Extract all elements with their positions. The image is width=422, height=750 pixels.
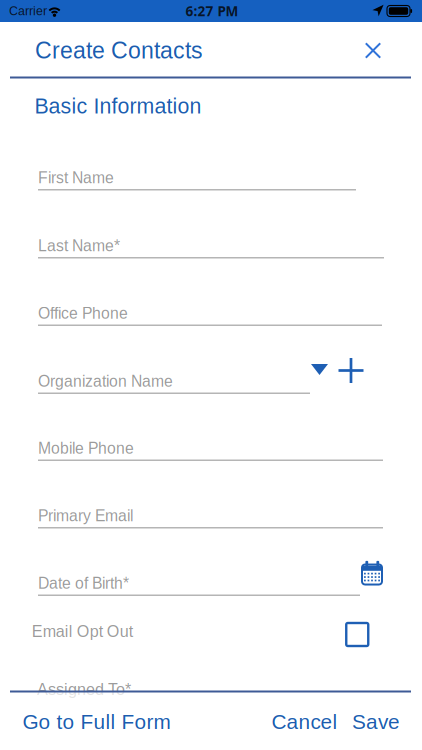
staticText: First Name (38, 169, 114, 186)
button[interactable]: Date of Birth* (38, 558, 360, 596)
button[interactable]: Email Opt Out (32, 614, 368, 648)
button[interactable] (360, 560, 384, 586)
button[interactable] (358, 35, 388, 65)
staticText: Organization Name (38, 372, 173, 390)
button[interactable]: Office Phone (38, 288, 382, 326)
button[interactable]: Mobile Phone (38, 423, 383, 461)
button[interactable]: First Name (38, 152, 356, 190)
staticText: Email Opt Out (32, 622, 133, 640)
staticText: Assigned To* (37, 680, 131, 698)
staticText: Last Name* (38, 237, 120, 254)
button[interactable]: Organization Name (38, 356, 310, 394)
staticText: Date of Birth* (38, 574, 129, 592)
staticText: Carrier (9, 4, 47, 18)
staticText: Save (352, 710, 400, 733)
staticText: 6:27 PM (185, 2, 238, 20)
button[interactable]: Go to Full Form (0, 710, 170, 733)
button[interactable]: Cancel (271, 710, 337, 733)
staticText: Basic Information (34, 94, 201, 118)
staticText: Go to Full Form (22, 710, 170, 733)
staticText: Create Contacts (35, 37, 203, 63)
button[interactable] (308, 358, 330, 380)
button[interactable]: Save (337, 710, 422, 733)
staticText: Mobile Phone (38, 439, 134, 457)
button[interactable]: Last Name* (38, 220, 384, 258)
staticText: Cancel (271, 710, 337, 733)
button[interactable]: Primary Email (38, 490, 383, 528)
staticText: Primary Email (38, 507, 133, 524)
staticText: Office Phone (38, 304, 128, 322)
button[interactable] (337, 356, 365, 384)
